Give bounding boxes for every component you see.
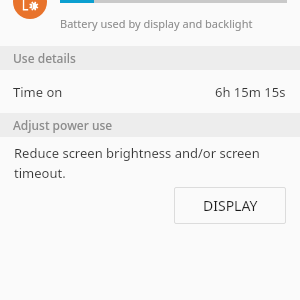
staticText: Battery used by display and backlight [60,16,253,31]
other: Display battery usage [13,0,47,19]
staticText: Time on [13,83,63,101]
button[interactable]: Time on [0,70,300,113]
staticText: Reduce screen brightness and/or screen t… [14,144,270,182]
button[interactable]: DISPLAY [174,187,286,224]
staticText: Adjust power use [13,117,113,133]
staticText: 6h 15m 15s [215,83,286,101]
staticText: DISPLAY [203,196,258,215]
staticText: Use details [13,50,76,66]
